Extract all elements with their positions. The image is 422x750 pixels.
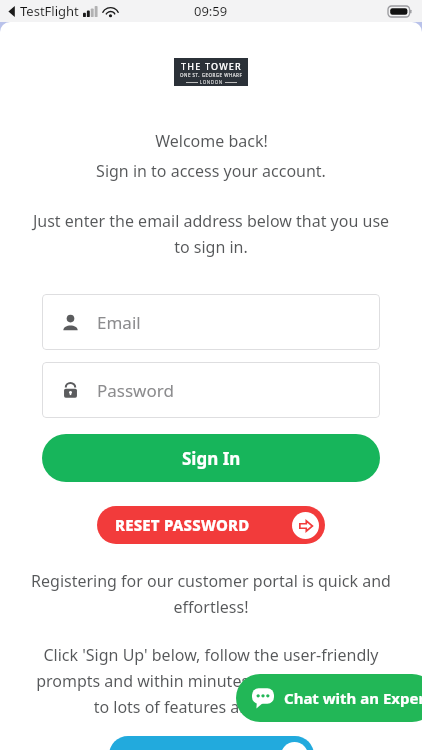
staticText: Welcome back! bbox=[155, 130, 268, 152]
staticText: Sign in to access your account. bbox=[96, 160, 326, 182]
staticText: Sign In bbox=[182, 447, 241, 470]
staticText: LONDON bbox=[198, 79, 225, 85]
staticText: Just enter the email address below that … bbox=[22, 210, 400, 258]
button[interactable]: Sign In bbox=[42, 434, 380, 482]
staticText: RESET PASSWORD bbox=[115, 515, 250, 535]
staticText: Chat with an Expert bbox=[284, 688, 422, 708]
staticText: Email bbox=[97, 311, 141, 334]
button[interactable]: RESET PASSWORD bbox=[97, 506, 325, 544]
staticText: TestFlight bbox=[20, 2, 79, 20]
staticText: Click 'Sign Up' below, follow the user-f… bbox=[22, 644, 400, 718]
staticText: 09:59 bbox=[194, 2, 228, 20]
staticText: Registering for our customer portal is q… bbox=[22, 570, 400, 618]
button[interactable]: Chat with an Expert bbox=[236, 674, 422, 722]
staticText: Password bbox=[97, 379, 174, 402]
button[interactable]: Email bbox=[42, 294, 380, 350]
staticText: THE TOWER bbox=[181, 60, 242, 72]
staticText: ONE ST. GEORGE WHARF bbox=[180, 72, 243, 78]
button[interactable]: Password bbox=[42, 362, 380, 418]
button[interactable]: SIGN UP bbox=[109, 736, 314, 750]
